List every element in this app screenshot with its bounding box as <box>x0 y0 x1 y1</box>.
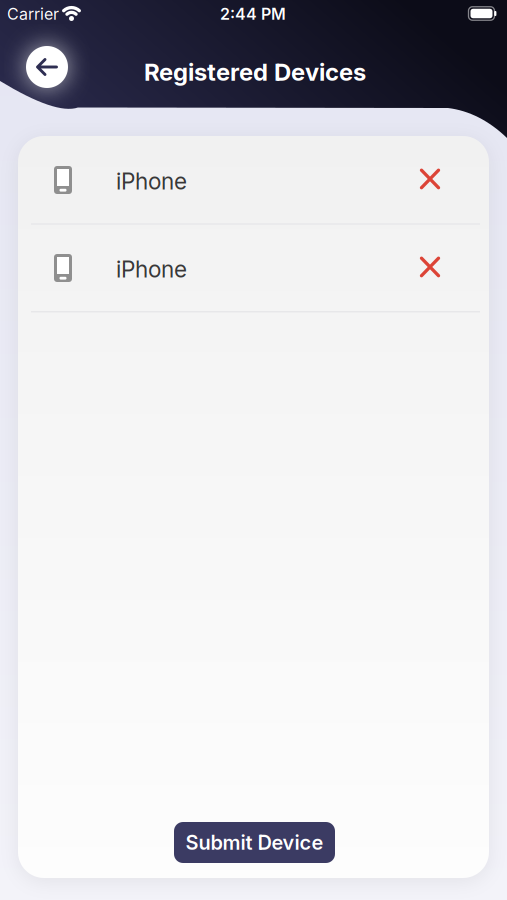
button[interactable]: Remove device <box>409 158 450 200</box>
button[interactable]: Submit Device <box>174 822 335 863</box>
staticText: Registered Devices <box>144 58 366 86</box>
button[interactable]: Remove device <box>409 246 450 288</box>
staticText: 2:44 PM <box>220 5 286 23</box>
staticText: Carrier <box>7 5 59 23</box>
staticText: iPhone <box>116 168 187 195</box>
staticText: Submit Device <box>185 831 323 854</box>
staticText: iPhone <box>116 256 187 283</box>
button[interactable]: Back <box>26 46 68 88</box>
